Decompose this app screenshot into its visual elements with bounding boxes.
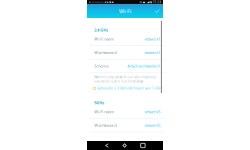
- button[interactable]: Recent apps: [138, 141, 147, 150]
- button[interactable]: Schema: [89, 59, 165, 73]
- staticText: Gebruik de 2.4 GHz instellingen voor 5 G…: [97, 87, 160, 90]
- button[interactable]: Back: [103, 141, 111, 150]
- button[interactable]: Gebruik de 2.4 GHz instellingen voor 5 G…: [87, 83, 168, 92]
- staticText: Schema: [94, 63, 108, 69]
- staticText: 5GHz: [94, 100, 104, 105]
- staticText: 2.4 GHz: [94, 27, 108, 33]
- staticText: Altijd inschakelen: [127, 63, 157, 69]
- staticText: netwerk5: [144, 109, 160, 114]
- button[interactable]: Wachtwoord: [89, 46, 165, 59]
- button[interactable]: Save: [152, 5, 163, 18]
- staticText: Wi-Fi: [119, 8, 131, 15]
- staticText: Wi-Fi naam: [94, 109, 114, 114]
- button[interactable]: Wi-Fi naam: [89, 105, 165, 119]
- staticText: Wanneer uitgeschakeld is je wifi-netwerk…: [94, 75, 156, 79]
- staticText: netwerk5: [144, 123, 160, 128]
- staticText: ingestelde tijden niet beschikbaar.: [94, 80, 144, 83]
- button[interactable]: Wi-Fi naam: [89, 32, 165, 46]
- staticText: Mijn Experia WhatsApp: [88, 1, 103, 3]
- button[interactable]: Home: [120, 141, 129, 150]
- staticText: Wi-Fi naam: [94, 36, 114, 42]
- staticText: netwerk1: [144, 36, 160, 42]
- staticText: Wachtwoord: [94, 123, 116, 128]
- staticText: Wachtwoord: [94, 50, 116, 55]
- staticText: netwerk1: [144, 50, 160, 55]
- button[interactable]: Wachtwoord: [89, 119, 165, 132]
- staticText: 10:24: [152, 0, 161, 4]
